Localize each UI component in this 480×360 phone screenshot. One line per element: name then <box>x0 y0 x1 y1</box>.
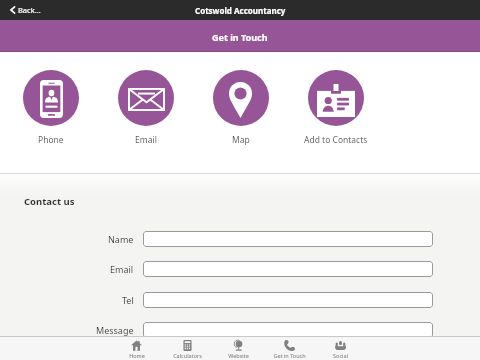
staticText: Home <box>129 352 145 359</box>
button[interactable] <box>143 292 433 308</box>
staticText: Calculators <box>173 352 202 359</box>
button[interactable]: Get in Touch <box>264 340 315 359</box>
staticText: Email <box>110 263 134 275</box>
button[interactable]: Social <box>315 340 366 359</box>
button[interactable] <box>143 322 433 338</box>
button[interactable]: Email <box>98 52 193 146</box>
staticText: Email <box>135 134 157 146</box>
button[interactable]: Add to Contacts <box>288 52 383 146</box>
staticText: Map <box>232 134 250 146</box>
button[interactable] <box>143 261 433 277</box>
staticText: Website <box>228 352 249 359</box>
staticText: Phone <box>38 134 64 146</box>
button[interactable]: Phone <box>3 52 98 146</box>
button[interactable] <box>143 231 433 247</box>
staticText: Contact us <box>24 195 75 208</box>
staticText: Get in Touch <box>212 31 268 43</box>
staticText: Name <box>108 233 134 245</box>
staticText: Back... <box>18 5 41 15</box>
staticText: Get in Touch <box>273 352 306 359</box>
staticText: Add to Contacts <box>304 134 368 146</box>
button[interactable]: Home <box>111 340 162 359</box>
button[interactable]: Website <box>213 340 264 359</box>
button[interactable]: Back... <box>0 2 49 18</box>
button[interactable]: Calculators <box>162 340 213 359</box>
staticText: Cotswold Accountancy <box>195 5 286 16</box>
staticText: Message <box>96 324 134 336</box>
staticText: Tel <box>122 294 134 306</box>
staticText: Social <box>333 352 348 359</box>
button[interactable]: Map <box>193 52 288 146</box>
